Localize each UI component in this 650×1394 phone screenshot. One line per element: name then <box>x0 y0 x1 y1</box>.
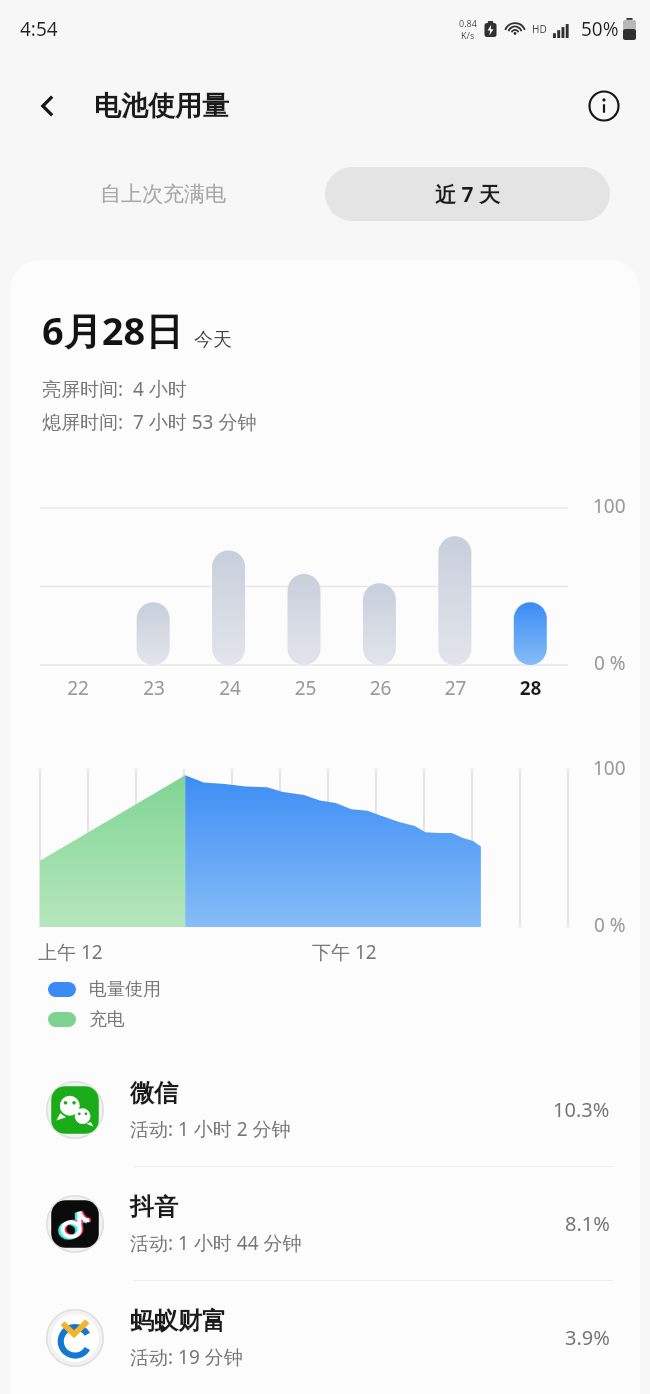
button[interactable]: 近 7 天 <box>325 167 610 221</box>
staticText: 自上次充满电 <box>100 181 226 207</box>
staticText: 活动: 1 小时 44 分钟 <box>130 1230 302 1256</box>
staticText: 下午 12 <box>312 939 377 962</box>
staticText: 0 % <box>594 912 626 938</box>
staticText: 活动: 19 分钟 <box>130 1344 243 1370</box>
button[interactable]: 抖音 <box>10 1167 640 1280</box>
staticText: 微信 <box>130 1078 178 1108</box>
staticText: 电池使用量 <box>94 89 229 123</box>
staticText: 0 % <box>594 650 626 676</box>
staticText: 8.1% <box>565 1210 610 1237</box>
staticText: 23 <box>116 675 192 701</box>
staticText: 50% <box>581 16 619 42</box>
staticText: 6月28日 <box>42 304 184 356</box>
button[interactable]: 自上次充满电 <box>0 167 325 221</box>
staticText: 3.9% <box>565 1324 610 1351</box>
staticText: 蚂蚁财富 <box>130 1306 226 1336</box>
staticText: K/s <box>461 29 475 41</box>
staticText: 充电 <box>89 1008 125 1031</box>
staticText: 上午 12 <box>38 939 103 962</box>
staticText: 10.3% <box>553 1096 610 1123</box>
button[interactable]: 微信 <box>10 1053 640 1166</box>
staticText: 亮屏时间: 4 小时 <box>42 376 187 402</box>
staticText: 27 <box>418 675 493 701</box>
staticText: 26 <box>343 675 418 701</box>
staticText: 28 <box>493 675 568 701</box>
button[interactable]: 蚂蚁财富 <box>10 1281 640 1394</box>
staticText: 100 <box>593 755 626 781</box>
button[interactable]: Back <box>24 82 72 130</box>
staticText: 熄屏时间: 7 小时 53 分钟 <box>42 409 257 435</box>
staticText: 22 <box>40 675 116 701</box>
staticText: 25 <box>268 675 343 701</box>
staticText: 4:54 <box>20 16 58 42</box>
staticText: 抖音 <box>130 1192 178 1222</box>
staticText: 0.84 <box>459 17 477 29</box>
staticText: 活动: 1 小时 2 分钟 <box>130 1116 291 1142</box>
button[interactable]: Information <box>580 82 628 130</box>
staticText: 今天 <box>194 328 232 352</box>
staticText: 电量使用 <box>89 978 161 1001</box>
staticText: HD <box>532 22 547 36</box>
staticText: 24 <box>192 675 268 701</box>
staticText: 近 7 天 <box>435 180 500 209</box>
staticText: 100 <box>593 493 626 519</box>
